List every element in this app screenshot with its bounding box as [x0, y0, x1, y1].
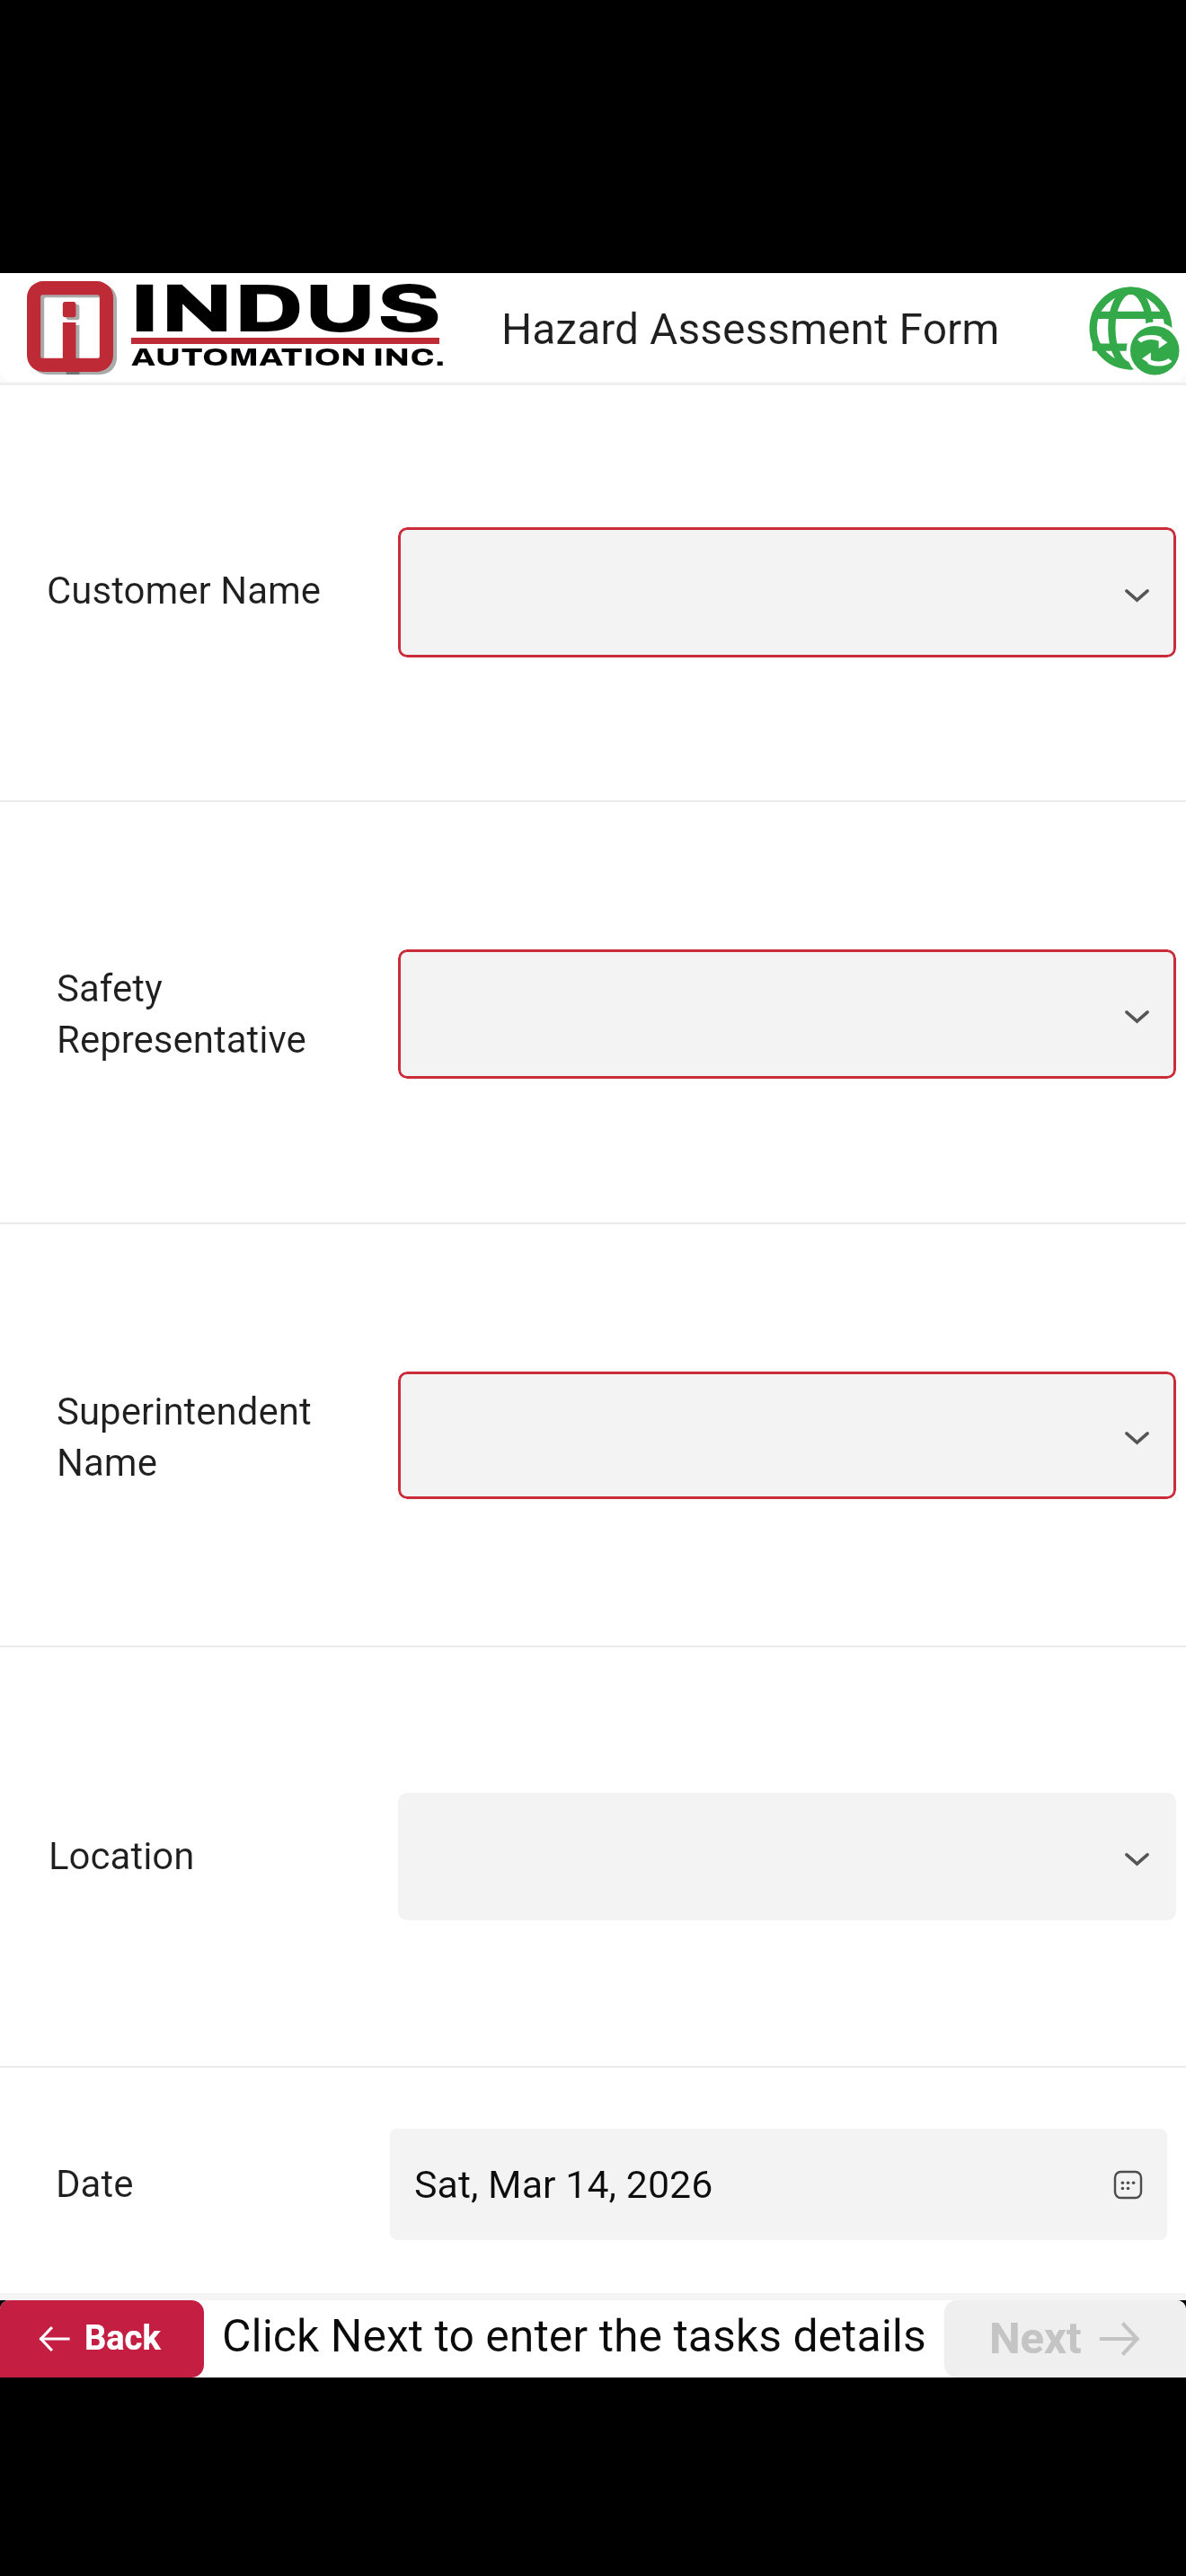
staticText: Back	[84, 2318, 161, 2359]
other: Pick date	[1115, 2172, 1141, 2198]
button[interactable]: Superintendent Name	[0, 1222, 1186, 1645]
button[interactable]: Select Location	[398, 1793, 1176, 1920]
staticText: Next	[989, 2313, 1082, 2364]
staticText: INDUS	[129, 273, 442, 346]
button[interactable]: Customer Name	[0, 381, 1186, 800]
staticText: Superintendent Name	[57, 1389, 312, 1485]
staticText: AUTOMATION INC.	[131, 344, 446, 370]
staticText: Hazard Assessment Form	[501, 304, 1000, 354]
staticText: Click Next to enter the tasks details	[222, 2310, 926, 2363]
button[interactable]: Safety Representative	[0, 800, 1186, 1222]
button[interactable]: Select date	[390, 2129, 1167, 2240]
staticText: Location	[49, 1834, 195, 1878]
button[interactable]: Sync data	[1088, 283, 1179, 374]
staticText: Sat, Mar 14, 2026	[414, 2162, 713, 2207]
staticText: Date	[56, 2162, 134, 2206]
staticText: Safety Representative	[57, 966, 306, 1062]
button[interactable]: Select Superintendent Name	[398, 1372, 1176, 1499]
staticText: Customer Name	[47, 569, 322, 613]
button[interactable]: Select Safety Representative	[398, 949, 1176, 1079]
button[interactable]: Location	[0, 1645, 1186, 2066]
button[interactable]: Date	[0, 2066, 1186, 2300]
button[interactable]: Back	[0, 2300, 204, 2378]
button[interactable]: Select Customer Name	[398, 527, 1176, 657]
button[interactable]: Next	[944, 2300, 1186, 2378]
